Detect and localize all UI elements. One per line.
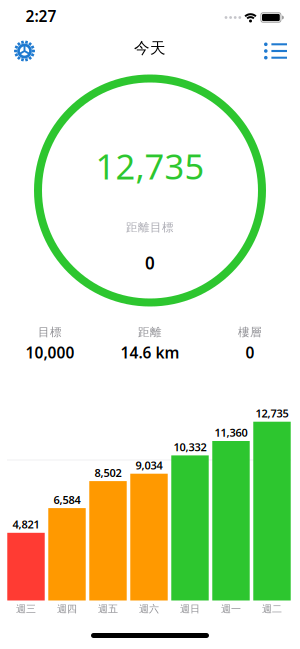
staticText: 樓層 bbox=[238, 325, 262, 339]
staticText: 14.6 km bbox=[120, 342, 179, 363]
staticText: 週四 bbox=[57, 603, 77, 615]
staticText: 0 bbox=[145, 251, 155, 275]
staticText: 12,735 bbox=[95, 143, 204, 190]
staticText: 週六 bbox=[139, 603, 159, 615]
staticText: 10,332 bbox=[173, 439, 206, 454]
staticText: 9,034 bbox=[135, 458, 162, 473]
staticText: 今天 bbox=[134, 38, 166, 58]
staticText: 週日 bbox=[180, 603, 200, 615]
staticText: 8,502 bbox=[94, 465, 121, 480]
staticText: 週二 bbox=[262, 603, 282, 615]
button[interactable]: History bbox=[264, 42, 300, 59]
staticText: 10,000 bbox=[25, 342, 74, 363]
staticText: 4,821 bbox=[12, 517, 39, 532]
button[interactable]: Settings bbox=[0, 40, 35, 61]
staticText: 6,584 bbox=[53, 492, 80, 507]
staticText: 週五 bbox=[98, 603, 118, 615]
staticText: 目標 bbox=[38, 325, 62, 339]
staticText: 0 bbox=[245, 342, 254, 363]
staticText: 距離 bbox=[138, 325, 162, 339]
staticText: 週三 bbox=[16, 603, 36, 615]
staticText: 11,360 bbox=[214, 425, 247, 440]
staticText: 距離目標 bbox=[126, 220, 174, 235]
staticText: 週一 bbox=[221, 603, 241, 615]
staticText: 2:27 bbox=[25, 5, 56, 26]
staticText: 12,735 bbox=[255, 406, 288, 421]
